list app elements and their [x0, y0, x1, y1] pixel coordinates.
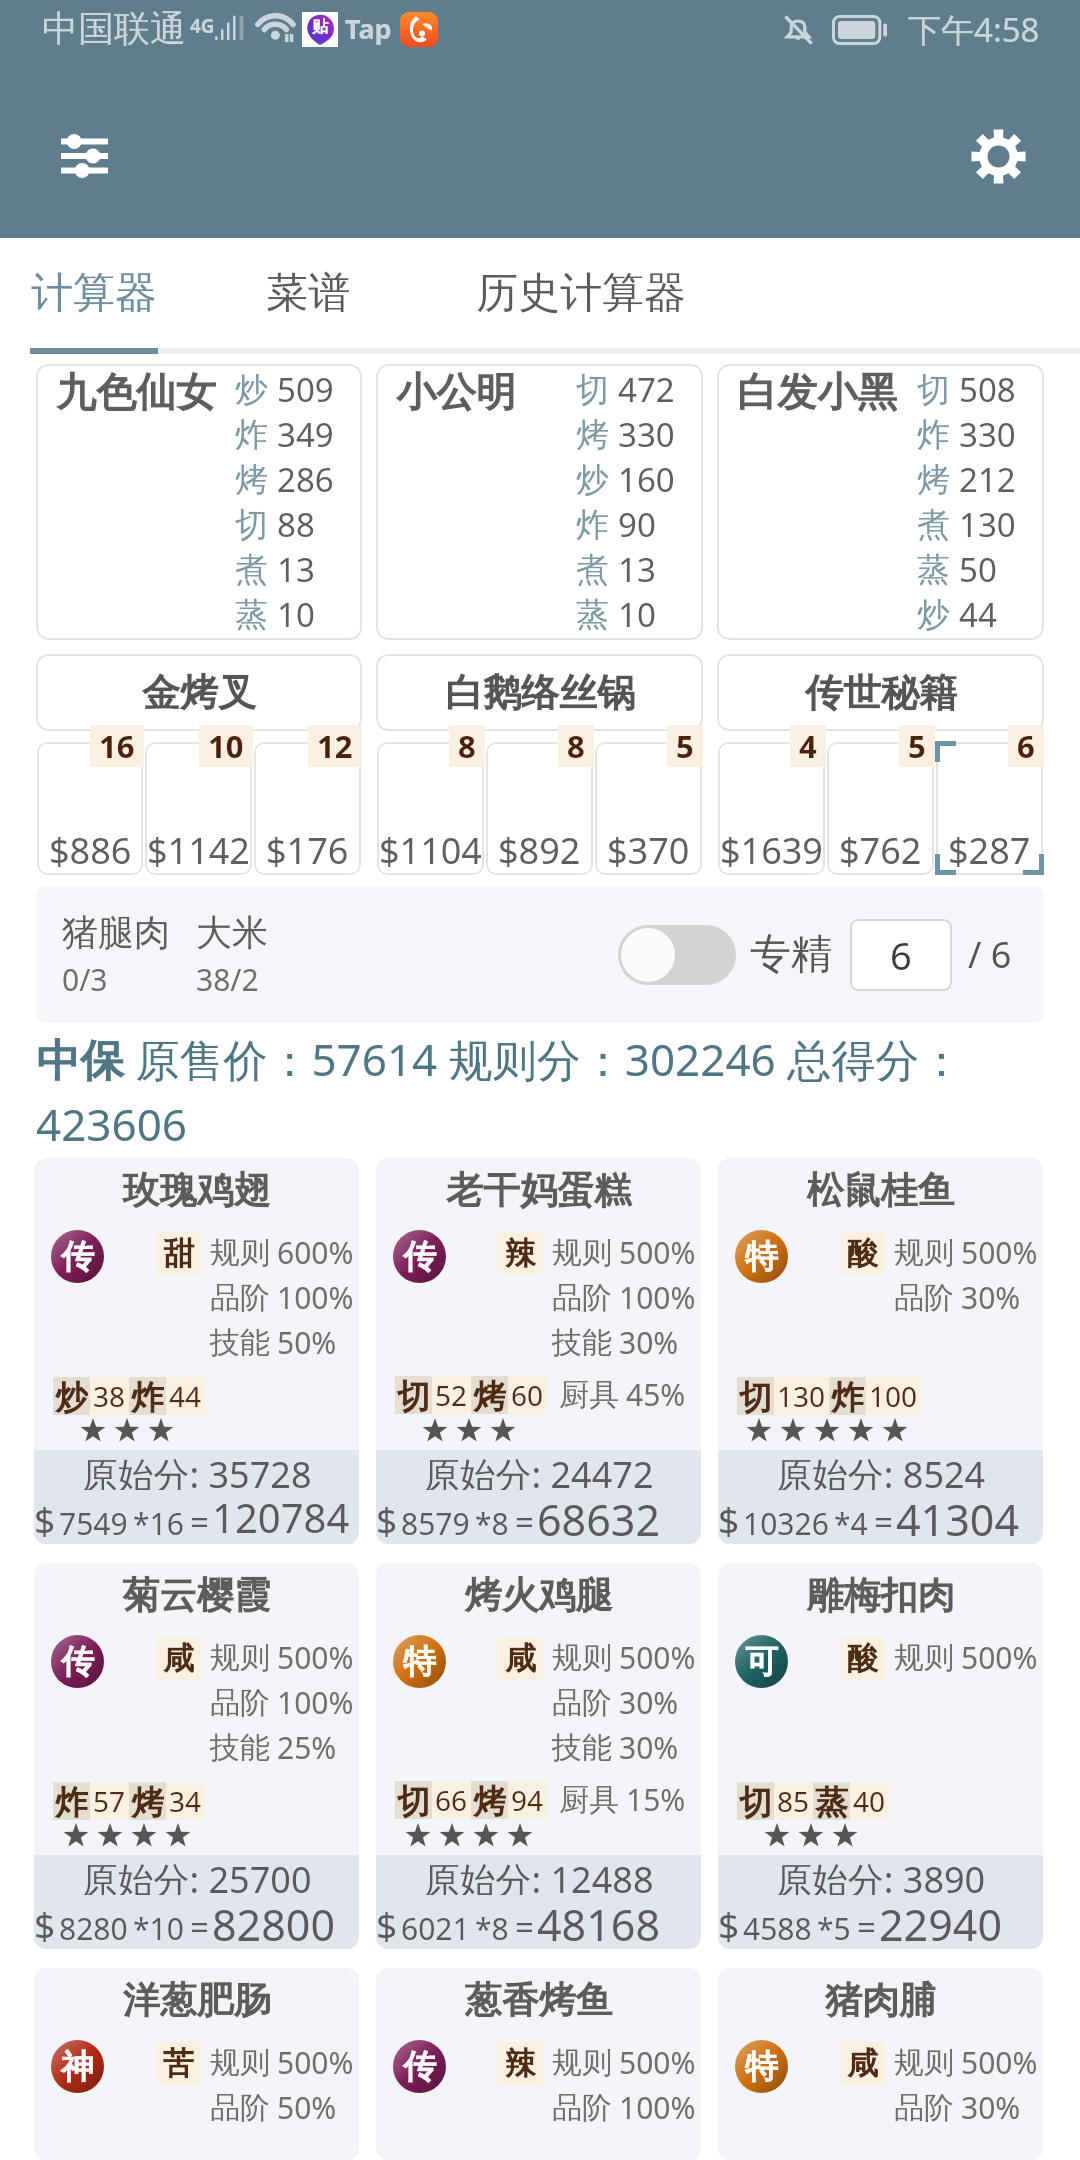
- staticText: 传: [61, 1641, 94, 1683]
- button[interactable]: 白鹅络丝锅: [376, 654, 703, 731]
- button[interactable]: 白发小黑: [717, 364, 1044, 640]
- staticText: 286: [277, 457, 334, 502]
- staticText: 10: [277, 592, 315, 637]
- button[interactable]: 小公明: [376, 364, 703, 640]
- staticText: 煮: [235, 549, 268, 591]
- button[interactable]: 计算器: [30, 238, 158, 348]
- staticText: =: [190, 1904, 209, 1949]
- staticText: Tap: [345, 10, 392, 47]
- staticText: 508: [959, 367, 1016, 412]
- staticText: 44: [959, 592, 997, 637]
- staticText: 炸: [576, 504, 609, 546]
- staticText: 34: [169, 1782, 202, 1820]
- staticText: 规则: [894, 1639, 954, 1677]
- button[interactable]: 雕梅扣肉: [718, 1563, 1043, 1949]
- button[interactable]: $370: [594, 733, 703, 875]
- staticText: 4: [799, 725, 817, 767]
- staticText: $1142: [147, 826, 250, 875]
- button[interactable]: Toggle specialization: [618, 925, 736, 985]
- staticText: 88: [277, 502, 315, 547]
- staticText: 6021: [401, 1908, 470, 1949]
- staticText: 规则: [894, 1234, 954, 1272]
- staticText: 规则: [552, 1639, 612, 1677]
- staticText: 13: [618, 547, 656, 592]
- staticText: 500%: [961, 1637, 1038, 1678]
- button[interactable]: Settings: [951, 110, 1045, 202]
- staticText: 品阶: [210, 2089, 270, 2127]
- staticText: 规则: [894, 2044, 954, 2082]
- staticText: 349: [277, 412, 334, 457]
- staticText: 212: [959, 457, 1016, 502]
- staticText: 大米: [196, 910, 268, 955]
- staticText: 40: [853, 1782, 886, 1820]
- staticText: 切: [917, 369, 950, 411]
- staticText: 16: [99, 725, 135, 767]
- button[interactable]: 传世秘籍: [717, 654, 1044, 731]
- staticText: 煮: [576, 549, 609, 591]
- button[interactable]: 历史计算器: [470, 238, 692, 348]
- button[interactable]: $762: [826, 733, 935, 875]
- staticText: 原始分: 8524: [718, 1450, 1043, 1490]
- staticText: 30%: [619, 1682, 679, 1723]
- button[interactable]: $1142: [144, 733, 253, 875]
- staticText: 130: [959, 502, 1016, 547]
- button[interactable]: 烤火鸡腿: [376, 1563, 701, 1949]
- button[interactable]: 玫瑰鸡翅: [34, 1158, 359, 1544]
- staticText: 品阶: [552, 1684, 612, 1722]
- staticText: 品阶: [894, 1279, 954, 1317]
- staticText: 技能: [210, 1729, 270, 1767]
- button[interactable]: 洋葱肥肠: [34, 1968, 359, 2160]
- staticText: 技能: [210, 1324, 270, 1362]
- staticText: 25%: [277, 1727, 337, 1768]
- staticText: 500%: [619, 2042, 696, 2083]
- button[interactable]: 菊云樱霞: [34, 1563, 359, 1949]
- staticText: =: [515, 1904, 534, 1949]
- button[interactable]: 松鼠桂鱼: [718, 1158, 1043, 1544]
- button[interactable]: $886: [36, 733, 144, 875]
- staticText: 100%: [277, 1277, 354, 1318]
- staticText: *5: [817, 1908, 851, 1949]
- staticText: 50: [959, 547, 997, 592]
- staticText: $370: [607, 826, 690, 875]
- staticText: 炸: [55, 1782, 88, 1820]
- staticText: 金烤叉: [142, 669, 256, 717]
- button[interactable]: Filter: [37, 110, 131, 202]
- button[interactable]: 九色仙女: [36, 364, 362, 640]
- button[interactable]: 6: [850, 919, 952, 991]
- staticText: *8: [475, 1503, 509, 1544]
- button[interactable]: 金烤叉: [36, 654, 362, 731]
- button[interactable]: $287: [935, 733, 1044, 875]
- staticText: 酸: [847, 1234, 878, 1273]
- staticText: 蒸: [917, 549, 950, 591]
- button[interactable]: $892: [485, 733, 594, 875]
- button[interactable]: 老干妈蛋糕: [376, 1158, 701, 1544]
- staticText: 葱香烤鱼: [376, 1977, 701, 2024]
- staticText: 规则: [552, 2044, 612, 2082]
- staticText: 30%: [961, 2087, 1021, 2128]
- staticText: 7549: [59, 1503, 128, 1544]
- staticText: 苦: [163, 2044, 194, 2083]
- staticText: 38: [93, 1377, 126, 1415]
- button[interactable]: $1104: [376, 733, 485, 875]
- staticText: 100%: [619, 2087, 696, 2128]
- button[interactable]: 葱香烤鱼: [376, 1968, 701, 2160]
- staticText: 专精: [750, 929, 832, 981]
- button[interactable]: 猪肉脯: [718, 1968, 1043, 2160]
- staticText: 传: [61, 1236, 94, 1278]
- staticText: $: [718, 1494, 740, 1544]
- staticText: 30%: [961, 1277, 1021, 1318]
- button[interactable]: $176: [253, 733, 362, 875]
- staticText: 烤: [131, 1782, 164, 1820]
- button[interactable]: $1639: [717, 733, 826, 875]
- staticText: 6: [890, 929, 912, 981]
- staticText: *10: [133, 1908, 184, 1949]
- staticText: 猪肉脯: [718, 1977, 1043, 2024]
- staticText: 57: [93, 1782, 126, 1820]
- staticText: 技能: [552, 1729, 612, 1767]
- staticText: 8: [567, 725, 585, 767]
- staticText: 传: [403, 2046, 436, 2088]
- staticText: 切: [739, 1377, 772, 1415]
- staticText: 50%: [277, 2087, 337, 2128]
- button[interactable]: 菜谱: [258, 238, 358, 348]
- staticText: 5: [676, 725, 694, 767]
